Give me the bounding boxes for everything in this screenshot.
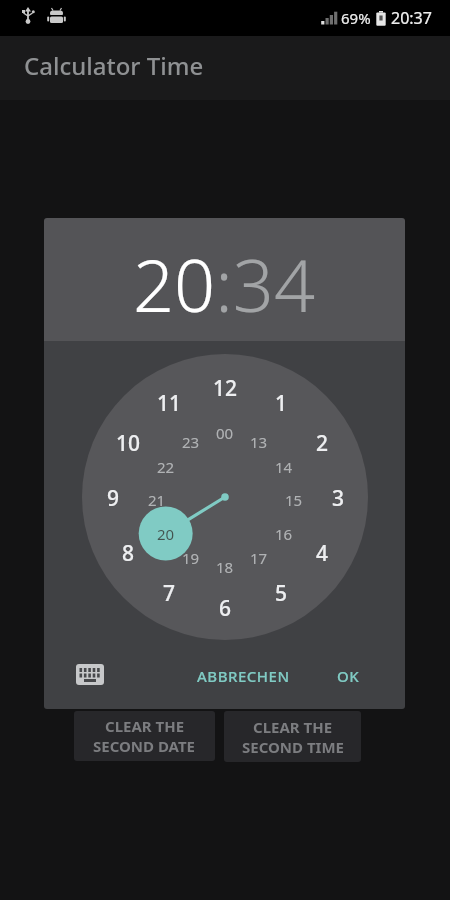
button[interactable]: CLEAR THE	[224, 711, 361, 762]
button[interactable]: ABBRECHEN	[195, 659, 291, 693]
staticText: SECOND TIME	[242, 737, 344, 757]
staticText: 23	[182, 432, 200, 452]
staticText: 9	[107, 484, 120, 510]
staticText: ABBRECHEN	[197, 666, 290, 686]
staticText: 18	[216, 557, 234, 577]
button[interactable]: CLEAR THE	[74, 711, 215, 761]
staticText: 8	[122, 539, 135, 565]
staticText: 10	[116, 429, 141, 455]
staticText: SECOND DATE	[93, 736, 196, 756]
staticText: Calculator Time	[24, 49, 204, 82]
staticText: 20	[157, 524, 175, 544]
staticText: 20:37	[391, 7, 432, 29]
staticText: CLEAR THE	[253, 717, 333, 737]
button[interactable]	[68, 655, 112, 695]
staticText: 7	[163, 579, 176, 605]
staticText: CLEAR THE	[105, 716, 185, 736]
button[interactable]: OK	[326, 659, 370, 693]
staticText: 17	[250, 548, 268, 568]
staticText: 11	[157, 389, 182, 415]
staticText: 19	[182, 548, 200, 568]
staticText: 2	[316, 429, 329, 455]
staticText: 15	[285, 490, 303, 510]
staticText: 5	[275, 579, 288, 605]
staticText: 14	[275, 457, 293, 477]
staticText: 4	[316, 539, 329, 565]
staticText: OK	[337, 666, 360, 686]
staticText: 13	[250, 432, 268, 452]
staticText: 3	[332, 484, 345, 510]
staticText: 6	[219, 594, 232, 620]
staticText: 16	[275, 524, 293, 544]
staticText: 69%	[341, 8, 371, 28]
staticText: 21	[148, 490, 166, 510]
staticText: 12	[213, 374, 238, 400]
staticText: 00	[216, 423, 234, 443]
staticText: 22	[157, 457, 175, 477]
staticText: 20:34	[133, 235, 316, 333]
staticText: 1	[275, 389, 288, 415]
